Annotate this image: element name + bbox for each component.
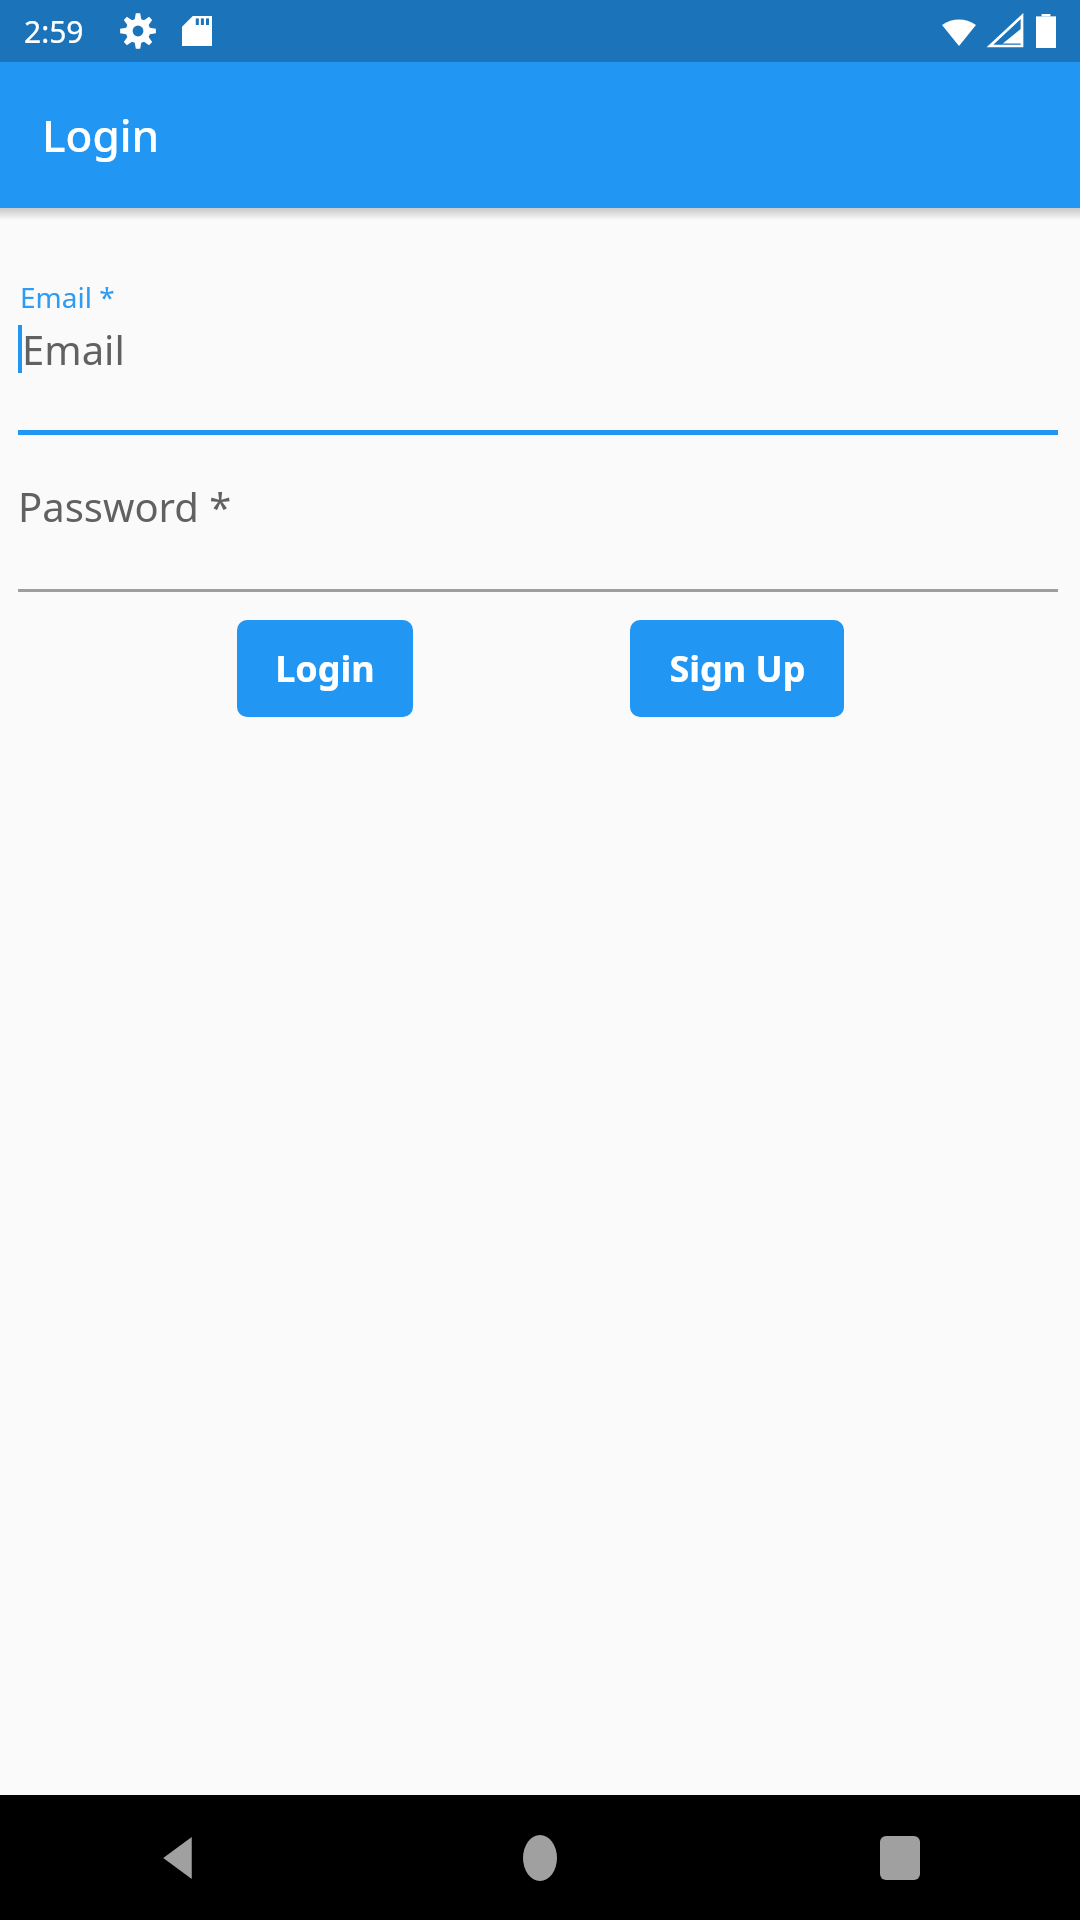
button[interactable]: Sign Up (630, 620, 844, 717)
staticText: Email (22, 322, 125, 376)
button[interactable]: Password * (0, 447, 1080, 602)
staticText: 2:59 (24, 11, 84, 52)
button[interactable]: Recent apps (720, 1795, 1080, 1920)
button[interactable]: Home (360, 1795, 720, 1920)
staticText: Sign Up (669, 644, 806, 693)
staticText: Password * (18, 479, 232, 533)
button[interactable]: Back (0, 1795, 360, 1920)
button[interactable]: Login (237, 620, 413, 717)
button[interactable]: Email * (0, 270, 1080, 447)
staticText: Login (275, 644, 375, 693)
staticText: Email * (20, 278, 115, 316)
staticText: Login (42, 105, 160, 165)
